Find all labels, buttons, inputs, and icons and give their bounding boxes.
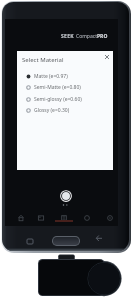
button[interactable]: Nav item 4 [103,211,117,225]
staticText: Glossy (e=0.30) [34,107,70,114]
button[interactable]: Semi-glossy (e=0.60) [17,94,113,105]
button[interactable]: Recent apps [24,236,35,246]
button[interactable]: Capture [60,190,72,202]
button[interactable]: Matte (e=0.97) [17,71,113,82]
button[interactable]: Back [93,233,104,243]
button[interactable]: Nav item 2 [57,211,71,225]
staticText: Semi-glossy (e=0.60) [34,96,82,103]
button[interactable]: Nav item 3 [80,211,94,225]
staticText: Select Material [22,56,64,64]
button[interactable]: Nav item 1 [34,211,48,225]
staticText: PRO [97,33,108,40]
staticText: Semi-Matte (e=0.80) [34,84,81,91]
staticText: Matte (e=0.97) [34,73,68,80]
button[interactable]: Glossy (e=0.30) [17,105,113,116]
button[interactable]: Semi-Matte (e=0.80) [17,82,113,93]
staticText: SEEK [61,33,74,40]
staticText: Compact [76,33,97,40]
button[interactable]: Nav item 0 [14,211,28,225]
button[interactable]: Close [101,51,113,63]
button[interactable]: Home [52,236,80,246]
